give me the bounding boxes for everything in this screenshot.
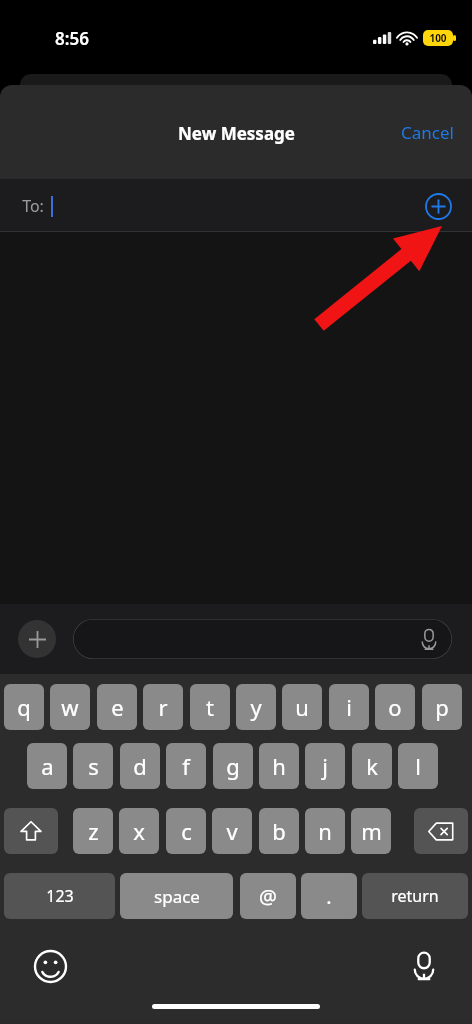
button[interactable]: q [4,684,44,730]
button[interactable]: j [305,743,345,789]
staticText: w [61,692,79,722]
staticText: New Message [178,122,295,145]
staticText: j [322,751,328,781]
button[interactable]: e [97,684,137,730]
staticText: f [182,751,190,781]
staticText: 100 [429,31,447,45]
button[interactable]: Dictation [404,946,444,986]
staticText: n [318,816,332,846]
staticText: a [41,751,54,781]
button[interactable]: @ [240,873,296,919]
button[interactable]: Backspace [414,808,468,854]
staticText: 123 [46,885,74,907]
staticText: s [88,751,99,781]
staticText: c [181,816,192,846]
staticText: @ [259,883,277,910]
staticText: d [133,751,147,781]
button[interactable]: y [236,684,276,730]
button[interactable]: m [351,808,391,854]
staticText: t [206,692,214,722]
button[interactable]: g [213,743,253,789]
button[interactable]: p [422,684,462,730]
button[interactable]: Shift [4,808,58,854]
staticText: q [17,692,31,722]
button[interactable]: k [352,743,392,789]
staticText: v [226,816,238,846]
button[interactable]: Add contact [421,189,455,223]
button[interactable]: w [50,684,90,730]
button[interactable]: a [27,743,67,789]
staticText: i [346,692,352,722]
button[interactable]: s [73,743,113,789]
staticText: o [388,692,402,722]
staticText: x [133,816,145,846]
staticText: Cancel [401,121,454,144]
button[interactable]: c [166,808,206,854]
button[interactable]: space [120,873,233,919]
staticText: e [111,692,124,722]
button[interactable]: z [73,808,113,854]
button[interactable]: f [166,743,206,789]
staticText: space [154,885,200,908]
button[interactable] [73,619,452,659]
staticText: p [435,692,449,722]
button[interactable]: t [190,684,230,730]
button[interactable]: Emoji [30,946,70,986]
staticText: . [326,883,332,910]
staticText: k [366,751,378,781]
staticText: m [361,816,382,846]
button[interactable]: o [375,684,415,730]
button[interactable]: h [259,743,299,789]
button[interactable]: 123 [4,873,115,919]
staticText: l [415,751,421,781]
button[interactable]: Cancel [383,109,472,156]
staticText: z [88,816,99,846]
button[interactable]: d [120,743,160,789]
button[interactable]: i [329,684,369,730]
button[interactable]: b [259,808,299,854]
button[interactable]: return [362,873,468,919]
staticText: 8:56 [55,27,89,50]
button[interactable]: u [282,684,322,730]
staticText: b [272,816,286,846]
button[interactable]: n [305,808,345,854]
staticText: To: [22,195,44,217]
staticText: g [226,751,240,781]
staticText: h [272,751,286,781]
staticText: return [391,885,439,907]
button[interactable]: . [301,873,357,919]
button[interactable]: v [212,808,252,854]
staticText: r [158,692,168,722]
button[interactable]: l [398,743,438,789]
button[interactable]: r [143,684,183,730]
staticText: y [250,692,262,722]
staticText: u [295,692,309,722]
button[interactable]: Add attachment [18,620,56,658]
button[interactable]: x [119,808,159,854]
